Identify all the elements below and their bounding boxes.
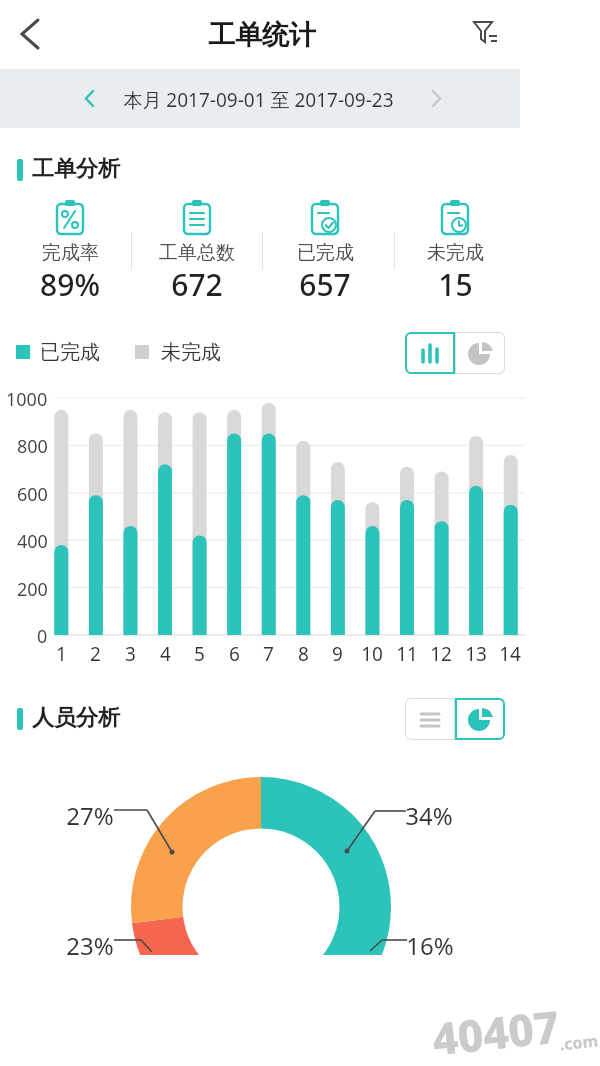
staticText: 未完成	[161, 340, 221, 365]
staticText: 14	[499, 641, 521, 667]
staticText: 34%	[405, 799, 453, 832]
button[interactable]	[137, 196, 257, 306]
staticText: 2	[90, 641, 101, 667]
staticText: 89%	[40, 264, 100, 305]
button[interactable]: 本月 2017-09-01 至 2017-09-23	[0, 69, 520, 128]
staticText: 600	[17, 482, 48, 507]
staticText: 27%	[66, 799, 114, 832]
staticText: 工单总数	[159, 241, 235, 265]
staticText: .com	[558, 1029, 600, 1055]
staticText: 人员分析	[32, 704, 120, 732]
button[interactable]	[470, 18, 506, 54]
staticText: 10	[361, 641, 383, 667]
staticText: 657	[299, 264, 351, 305]
staticText: 200	[17, 577, 48, 602]
staticText: 工单分析	[32, 155, 120, 183]
staticText: 5	[194, 641, 205, 667]
staticText: 11	[396, 641, 418, 667]
staticText: 7	[263, 641, 274, 667]
staticText: 已完成	[297, 241, 354, 265]
button[interactable]	[14, 18, 50, 54]
staticText: 4	[160, 641, 171, 667]
staticText: 12	[430, 641, 452, 667]
staticText: 800	[17, 434, 48, 459]
staticText: 未完成	[427, 241, 484, 265]
staticText: 3	[125, 641, 136, 667]
button[interactable]	[405, 332, 455, 374]
staticText: 16%	[406, 929, 454, 962]
staticText: 0	[37, 624, 48, 649]
staticText: 40407	[429, 995, 563, 1066]
button[interactable]	[455, 332, 505, 374]
staticText: 完成率	[42, 241, 99, 265]
staticText: 8	[298, 641, 309, 667]
staticText: 工单统计	[208, 18, 316, 52]
staticText: 13	[465, 641, 487, 667]
staticText: 23%	[66, 929, 114, 962]
staticText: 400	[17, 529, 48, 554]
button[interactable]	[455, 698, 505, 740]
staticText: 9	[332, 641, 343, 667]
staticText: 1	[56, 641, 67, 667]
staticText: 本月 2017-09-01 至 2017-09-23	[123, 87, 394, 113]
button[interactable]	[265, 196, 385, 306]
staticText: 已完成	[40, 340, 100, 365]
button[interactable]	[405, 698, 455, 740]
staticText: 672	[171, 264, 223, 305]
button[interactable]	[10, 196, 130, 306]
staticText: 15	[438, 264, 473, 305]
staticText: 6	[229, 641, 240, 667]
staticText: 1000	[6, 387, 48, 412]
button[interactable]	[395, 196, 515, 306]
